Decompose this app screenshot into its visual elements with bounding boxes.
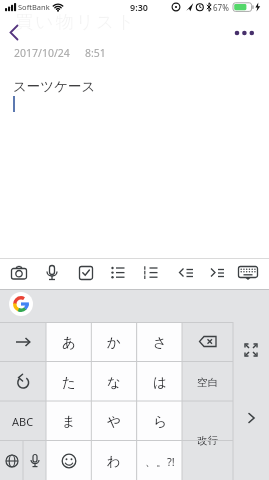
button[interactable]: あ xyxy=(46,322,91,362)
button[interactable] xyxy=(228,24,262,42)
button[interactable] xyxy=(5,259,33,287)
button[interactable] xyxy=(182,322,233,362)
button[interactable]: か xyxy=(91,322,136,362)
button[interactable]: わ xyxy=(91,441,136,480)
staticText: は xyxy=(153,374,167,391)
button[interactable] xyxy=(172,259,200,287)
button[interactable] xyxy=(233,398,269,438)
button[interactable]: ら xyxy=(137,401,182,441)
staticText: 改行 xyxy=(197,434,218,447)
button[interactable]: 改行 xyxy=(182,401,233,480)
button[interactable] xyxy=(9,292,33,316)
button[interactable] xyxy=(233,322,269,377)
staticText: 、。?! xyxy=(145,454,175,469)
button[interactable] xyxy=(72,259,100,287)
button[interactable] xyxy=(0,441,23,480)
staticText: 9:30 xyxy=(130,1,148,13)
staticText: 67% xyxy=(213,2,229,13)
button[interactable] xyxy=(203,259,231,287)
button[interactable]: な xyxy=(91,362,136,402)
staticText: ま xyxy=(62,413,76,430)
staticText: 空白 xyxy=(197,376,218,389)
staticText: や xyxy=(107,413,121,430)
staticText: さ xyxy=(153,334,167,351)
button[interactable] xyxy=(2,22,26,44)
button[interactable] xyxy=(0,322,46,362)
button[interactable]: 、。?! xyxy=(137,441,182,480)
button[interactable] xyxy=(234,259,262,287)
staticText: わ xyxy=(107,453,121,470)
button[interactable]: 空白 xyxy=(182,362,233,402)
staticText: スーツケース xyxy=(13,78,96,95)
staticText: か xyxy=(107,334,121,351)
button[interactable]: ま xyxy=(46,401,91,441)
staticText: 2017/10/24 xyxy=(14,46,70,60)
staticText: 買い物リスト xyxy=(15,11,137,34)
staticText: SoftBank xyxy=(18,2,50,12)
button[interactable] xyxy=(46,441,91,480)
button[interactable]: は xyxy=(137,362,182,402)
staticText: あ xyxy=(62,334,76,351)
button[interactable]: さ xyxy=(137,322,182,362)
button[interactable]: ABC xyxy=(0,401,46,441)
button[interactable] xyxy=(38,259,66,287)
button[interactable] xyxy=(137,259,165,287)
staticText: ABC xyxy=(12,414,34,429)
button[interactable] xyxy=(104,259,132,287)
staticText: な xyxy=(107,374,121,391)
staticText: た xyxy=(62,374,76,391)
staticText: 8:51 xyxy=(85,46,106,60)
button[interactable]: や xyxy=(91,401,136,441)
button[interactable] xyxy=(23,441,46,480)
button[interactable]: た xyxy=(46,362,91,402)
staticText: ら xyxy=(153,413,167,430)
button[interactable] xyxy=(0,362,46,402)
